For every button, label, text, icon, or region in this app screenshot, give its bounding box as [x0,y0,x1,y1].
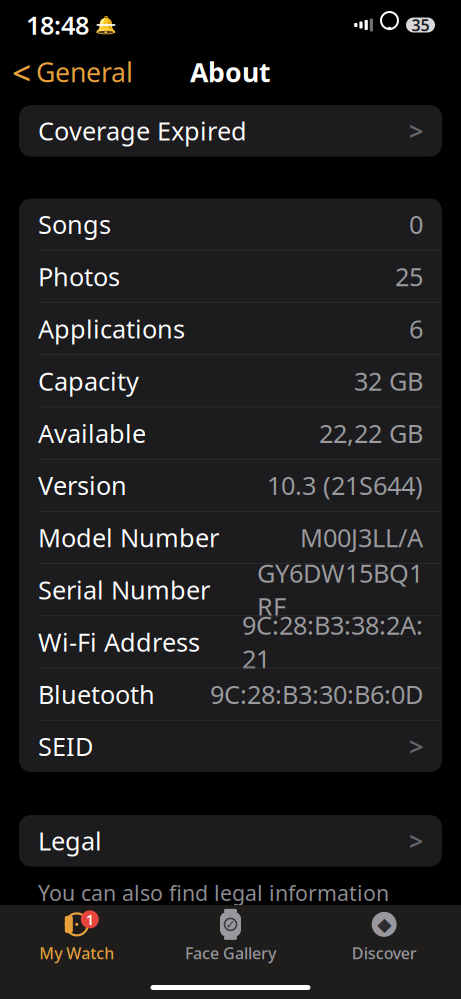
staticText: 🔔 [95,15,117,35]
staticText: > [409,824,423,857]
staticText: 18:48 [26,8,89,42]
button[interactable]: 1 [0,911,154,963]
button[interactable]: Serial Number [19,564,442,615]
button[interactable]: Wi-Fi Address [19,616,442,668]
button[interactable]: Model Number [19,512,442,563]
button[interactable]: Version [19,459,442,511]
button[interactable]: Legal [19,815,442,866]
staticText: Wi-Fi Address [38,625,200,659]
button[interactable]: Photos [19,251,442,302]
staticText: 25 [395,260,423,293]
staticText: General [36,54,133,90]
staticText: Capacity [38,364,139,398]
button[interactable]: < [0,50,145,94]
button[interactable]: SEID [19,720,442,772]
staticText: Applications [38,312,185,345]
staticText: Photos [38,260,120,293]
staticText: Bluetooth [38,677,155,711]
staticText: Version [38,468,127,502]
staticText: ◆ [377,914,391,935]
button[interactable]: Available [19,407,442,459]
button[interactable]: Applications [19,303,442,354]
staticText: GY6DW15BQ1RF [257,556,423,623]
staticText: 0 [409,207,423,241]
staticText: About [190,54,271,90]
staticText: You can also find legal information and … [38,878,389,935]
staticText: 35 [411,14,429,36]
button[interactable]: ◆ [307,911,461,963]
staticText: > [409,729,423,763]
staticText: 9C:28:B3:38:2A:21 [242,608,423,675]
staticText: > [409,114,423,147]
button[interactable]: Bluetooth [19,668,442,720]
staticText: Serial Number [38,573,210,606]
staticText: ✓ [225,918,235,931]
staticText: Available [38,416,146,450]
staticText: 32 GB [354,364,423,398]
staticText: Model Number [38,521,219,554]
staticText: SEID [38,729,93,763]
button[interactable]: ✓ [154,911,307,963]
button[interactable]: Coverage Expired [19,105,442,156]
staticText: My Watch [39,942,114,964]
button[interactable]: Songs [19,198,442,250]
button[interactable]: Capacity [19,355,442,407]
staticText: 9C:28:B3:30:B6:0D [210,677,423,711]
staticText: M00J3LL/A [300,521,423,554]
staticText: Face Gallery [185,942,276,964]
staticText: 6 [409,312,423,345]
staticText: 10.3 (21S644) [267,468,423,502]
staticText: Discover [352,942,417,964]
staticText: Songs [38,207,111,241]
staticText: 1 [86,910,94,929]
staticText: 22,22 GB [319,416,423,450]
staticText: Legal [38,824,102,857]
staticText: Coverage Expired [38,114,247,147]
staticText: < [12,50,31,94]
